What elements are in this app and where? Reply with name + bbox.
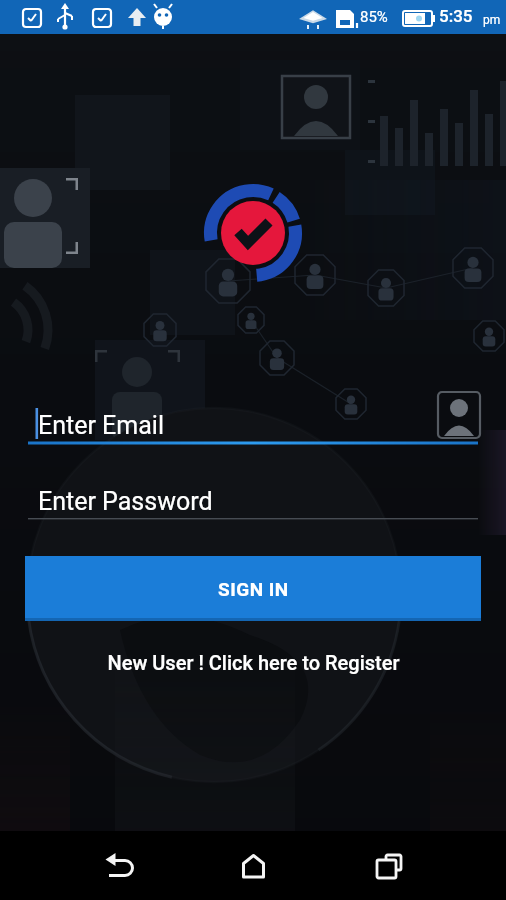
button[interactable] <box>0 831 168 900</box>
button[interactable] <box>168 831 337 900</box>
button[interactable] <box>337 831 506 900</box>
staticText: New User ! Click here to Register <box>107 651 400 674</box>
button[interactable]: Enter Email <box>28 403 478 445</box>
staticText: pm <box>483 13 501 27</box>
staticText: 5:35 <box>439 6 473 26</box>
button[interactable]: Enter Password <box>28 479 478 521</box>
staticText: SIGN IN <box>218 578 289 600</box>
button[interactable]: SIGN IN <box>25 556 481 621</box>
staticText: 85% <box>360 8 388 26</box>
button[interactable]: New User ! Click here to Register <box>0 645 506 679</box>
staticText: Enter Email <box>38 411 165 440</box>
staticText: Enter Password <box>38 487 213 516</box>
